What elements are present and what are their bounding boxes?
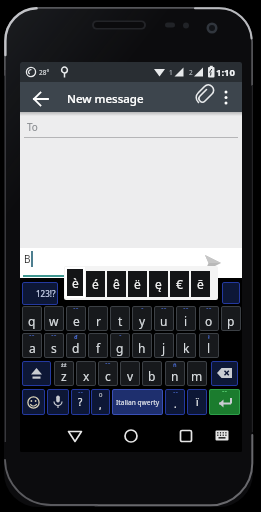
- button[interactable]: [222, 282, 240, 304]
- button[interactable]: ˆˇ: [71, 389, 90, 415]
- staticText: k: [183, 340, 190, 356]
- staticText: ˆˇ: [173, 391, 178, 398]
- button[interactable]: 123!?: [22, 282, 58, 305]
- staticText: ˆˇ: [78, 391, 83, 398]
- button[interactable]: ˆˇ: [176, 306, 196, 331]
- button[interactable]: k: [176, 333, 196, 358]
- staticText: ˆˇ: [51, 333, 57, 340]
- staticText: è: [72, 275, 79, 291]
- button[interactable]: v: [120, 361, 140, 386]
- button[interactable]: đ: [66, 333, 86, 358]
- button[interactable]: [20, 82, 62, 112]
- staticText: n: [171, 368, 179, 384]
- button[interactable]: b: [142, 361, 162, 386]
- button[interactable]: è: [65, 267, 85, 298]
- staticText: ê: [113, 276, 120, 292]
- button[interactable]: [61, 422, 89, 450]
- button[interactable]: 0: [91, 389, 110, 415]
- staticText: t: [118, 313, 123, 329]
- staticText: j: [162, 340, 166, 356]
- staticText: l: [207, 340, 211, 356]
- button[interactable]: f: [88, 333, 108, 358]
- staticText: d: [72, 340, 80, 356]
- staticText: s: [51, 340, 57, 356]
- staticText: 0: [99, 391, 103, 399]
- button[interactable]: ñ: [165, 361, 185, 386]
- button[interactable]: ˆˇ: [98, 361, 118, 386]
- staticText: New message: [67, 91, 144, 107]
- button[interactable]: [211, 361, 238, 386]
- button[interactable]: Italian qwerty: [112, 389, 163, 415]
- staticText: h: [138, 340, 146, 356]
- button[interactable]: t: [110, 306, 130, 331]
- staticText: ˆˇ: [73, 306, 79, 313]
- button[interactable]: ê: [107, 271, 126, 297]
- staticText: 28°: [39, 68, 50, 77]
- staticText: b: [148, 368, 156, 384]
- button[interactable]: [47, 389, 69, 415]
- staticText: u: [160, 313, 168, 329]
- staticText: c: [105, 368, 111, 384]
- staticText: .: [174, 397, 177, 411]
- staticText: v: [127, 368, 134, 384]
- button[interactable]: ˆˇ: [22, 333, 42, 358]
- button[interactable]: ï: [187, 389, 207, 415]
- button[interactable]: żź: [54, 361, 74, 386]
- button[interactable]: h: [132, 333, 152, 358]
- button[interactable]: m: [187, 361, 207, 386]
- button[interactable]: ł: [199, 333, 219, 358]
- staticText: r: [96, 313, 101, 329]
- button[interactable]: ˆˇ: [44, 333, 64, 358]
- button[interactable]: w: [44, 306, 64, 331]
- button[interactable]: ˆ: [110, 333, 130, 358]
- staticText: 1:10: [216, 66, 235, 79]
- staticText: ˆˇ: [29, 333, 35, 340]
- staticText: ˆˇ: [183, 306, 189, 313]
- staticText: f: [96, 340, 101, 356]
- button[interactable]: q: [22, 306, 42, 331]
- staticText: ï: [196, 395, 199, 409]
- button[interactable]: [117, 422, 145, 450]
- button[interactable]: [214, 424, 230, 448]
- staticText: w: [49, 313, 59, 329]
- button[interactable]: ˆˇ: [154, 306, 174, 331]
- button[interactable]: ˆ: [132, 306, 152, 331]
- staticText: Italian qwerty: [116, 398, 160, 407]
- button[interactable]: p: [221, 306, 241, 331]
- staticText: ę: [155, 276, 162, 292]
- button[interactable]: r: [88, 306, 108, 331]
- staticText: g: [116, 340, 124, 356]
- button[interactable]: j: [154, 333, 174, 358]
- staticText: ë: [134, 276, 141, 292]
- button[interactable]: ˆˇ: [66, 306, 86, 331]
- staticText: y: [139, 313, 146, 329]
- button[interactable]: ē: [191, 271, 210, 297]
- staticText: €: [176, 276, 183, 292]
- staticText: ˆ: [119, 333, 122, 340]
- staticText: o: [205, 313, 213, 329]
- staticText: x: [83, 368, 90, 384]
- button[interactable]: B: [20, 248, 242, 278]
- button[interactable]: ˆˇ: [165, 389, 185, 415]
- button[interactable]: [22, 389, 45, 415]
- staticText: ?: [78, 395, 83, 409]
- staticText: ñ: [173, 361, 177, 368]
- button[interactable]: ë: [128, 271, 147, 297]
- button[interactable]: x: [76, 361, 96, 386]
- button[interactable]: [190, 82, 218, 112]
- button[interactable]: [22, 361, 51, 386]
- button[interactable]: ˆˇ: [199, 306, 219, 331]
- staticText: ē: [197, 276, 204, 292]
- button[interactable]: ę: [149, 271, 168, 297]
- button[interactable]: ˆˇ: [209, 389, 240, 415]
- button[interactable]: [172, 422, 200, 450]
- staticText: 2: [189, 68, 193, 77]
- button[interactable]: é: [86, 271, 105, 297]
- staticText: ˆˇ: [206, 306, 212, 313]
- staticText: ˆ: [141, 306, 144, 313]
- staticText: ł: [208, 333, 210, 340]
- staticText: To: [27, 120, 38, 134]
- staticText: é: [92, 276, 99, 292]
- button[interactable]: €: [170, 271, 189, 297]
- button[interactable]: [220, 82, 242, 112]
